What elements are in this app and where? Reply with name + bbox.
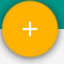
button[interactable]: Add bbox=[0, 0, 64, 64]
